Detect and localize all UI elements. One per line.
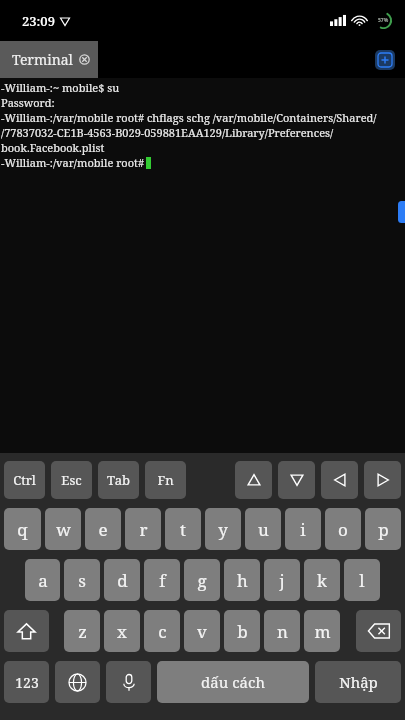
staticText: c: [158, 620, 167, 643]
staticText: b: [237, 620, 248, 643]
button[interactable]: j: [264, 559, 300, 601]
staticText: -William-:/var/mobile root#: [1, 155, 145, 170]
staticText: f: [159, 569, 166, 592]
staticText: i: [300, 518, 306, 541]
staticText: -William-:~ mobile$ su: [1, 80, 120, 95]
button[interactable]: z: [64, 610, 100, 652]
button[interactable]: Down: [278, 461, 315, 499]
button[interactable]: dấu cách: [157, 661, 309, 703]
button[interactable]: c: [144, 610, 180, 652]
staticText: book.Facebook.plist: [1, 140, 105, 155]
button[interactable]: Backspace: [356, 610, 401, 652]
button[interactable]: w: [45, 508, 81, 550]
button[interactable]: f: [144, 559, 180, 601]
button[interactable]: i: [285, 508, 321, 550]
button[interactable]: k: [304, 559, 340, 601]
staticText: l: [359, 569, 365, 592]
button[interactable]: Up: [235, 461, 272, 499]
button[interactable]: e: [85, 508, 121, 550]
staticText: z: [78, 620, 87, 643]
staticText: w: [56, 518, 71, 541]
staticText: r: [139, 518, 148, 541]
button[interactable]: v: [184, 610, 220, 652]
button[interactable]: a: [25, 559, 60, 601]
staticText: e: [98, 518, 108, 541]
staticText: d: [117, 569, 128, 592]
staticText: h: [237, 569, 248, 592]
button[interactable]: s: [64, 559, 100, 601]
button[interactable]: p: [365, 508, 401, 550]
button[interactable]: Terminal: [0, 41, 98, 78]
staticText: Tab: [107, 471, 130, 489]
button[interactable]: q: [4, 508, 41, 550]
staticText: s: [78, 569, 86, 592]
button[interactable]: 123: [4, 661, 49, 703]
staticText: Ctrl: [13, 471, 36, 489]
staticText: u: [258, 518, 269, 541]
staticText: Esc: [61, 471, 82, 489]
button[interactable]: Left: [321, 461, 358, 499]
button[interactable]: Tab: [98, 461, 139, 499]
button[interactable]: m: [304, 610, 340, 652]
staticText: a: [38, 569, 48, 592]
staticText: 23:09: [22, 12, 55, 30]
button[interactable]: Voice input: [106, 661, 151, 703]
staticText: x: [117, 620, 127, 643]
staticText: -William-:/var/mobile root# chflags schg…: [1, 110, 405, 125]
button[interactable]: l: [344, 559, 380, 601]
button[interactable]: b: [224, 610, 260, 652]
staticText: j: [279, 569, 285, 592]
button[interactable]: Change keyboard: [55, 661, 100, 703]
staticText: m: [314, 620, 331, 643]
button[interactable]: New tab: [375, 50, 395, 70]
button[interactable]: Shift: [4, 610, 49, 652]
staticText: t: [180, 518, 186, 541]
staticText: Nhập: [339, 672, 378, 692]
button[interactable]: t: [165, 508, 201, 550]
button[interactable]: Fn: [145, 461, 186, 499]
staticText: /77837032-CE1B-4563-B029-059881EAA129/Li…: [1, 125, 405, 140]
button[interactable]: x: [104, 610, 140, 652]
button[interactable]: d: [104, 559, 140, 601]
button[interactable]: h: [224, 559, 260, 601]
button[interactable]: Close tab: [79, 52, 90, 67]
staticText: v: [197, 620, 207, 643]
staticText: q: [17, 518, 28, 541]
button[interactable]: g: [184, 559, 220, 601]
staticText: p: [378, 518, 389, 541]
staticText: Fn: [157, 471, 174, 489]
button[interactable]: y: [205, 508, 241, 550]
button[interactable]: u: [245, 508, 281, 550]
staticText: n: [277, 620, 288, 643]
staticText: 123: [15, 673, 39, 692]
staticText: Password:: [1, 95, 55, 110]
button[interactable]: r: [125, 508, 161, 550]
staticText: 57%: [378, 17, 389, 24]
staticText: dấu cách: [201, 672, 265, 692]
button[interactable]: Right: [364, 461, 401, 499]
staticText: g: [197, 569, 207, 592]
staticText: k: [317, 569, 327, 592]
button[interactable]: o: [325, 508, 361, 550]
button[interactable]: Nhập: [315, 661, 401, 703]
staticText: Terminal: [12, 50, 73, 69]
button[interactable]: Ctrl: [4, 461, 45, 499]
staticText: o: [338, 518, 348, 541]
staticText: y: [218, 518, 228, 541]
button[interactable]: n: [264, 610, 300, 652]
button[interactable]: Esc: [51, 461, 92, 499]
